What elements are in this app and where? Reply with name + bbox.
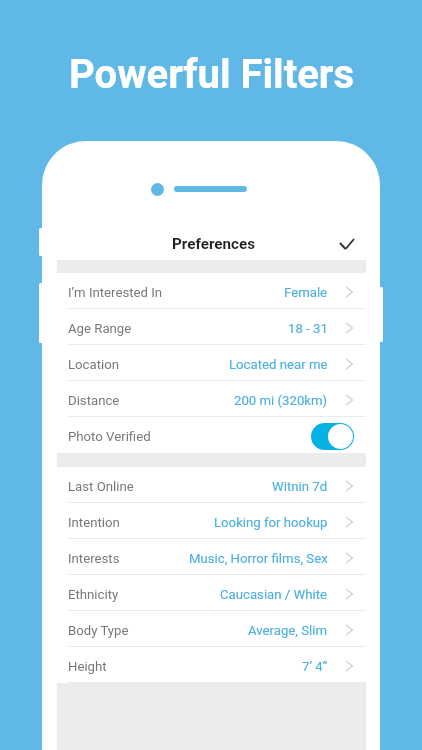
staticText: Average, Slim	[248, 623, 328, 638]
staticText: I’m Interested In	[68, 285, 163, 300]
staticText: Powerful Filters	[69, 51, 354, 98]
staticText: Female	[284, 285, 328, 300]
button[interactable]: Distance	[57, 381, 366, 417]
staticText: Interests	[68, 551, 120, 566]
button[interactable]: Intention	[57, 503, 366, 539]
button[interactable]: Last Online	[57, 467, 366, 503]
staticText: Ethnicity	[68, 587, 119, 602]
staticText: Caucasian / White	[220, 587, 328, 602]
button[interactable]: Done	[334, 231, 360, 257]
staticText: 200 mi (320km)	[234, 393, 328, 408]
staticText: Witnin 7d	[272, 479, 328, 494]
staticText: Body Type	[68, 623, 129, 638]
button[interactable]: Location	[57, 345, 366, 381]
staticText: Last Online	[68, 479, 134, 494]
staticText: 7’ 4’’	[302, 659, 328, 674]
staticText: Photo Verified	[68, 429, 151, 444]
staticText: Height	[68, 659, 107, 674]
button[interactable]: Interests	[57, 539, 366, 575]
staticText: Located near me	[229, 357, 328, 372]
button[interactable]: Ethnicity	[57, 575, 366, 611]
staticText: Age Range	[68, 321, 132, 336]
staticText: Distance	[68, 393, 120, 408]
button[interactable]: I’m Interested In	[57, 273, 366, 309]
staticText: Intention	[68, 515, 120, 530]
staticText: Music, Horror films, Sex	[189, 551, 328, 566]
staticText: Preferences	[172, 235, 255, 253]
staticText: Looking for hookup	[214, 515, 328, 530]
button[interactable]: Age Range	[57, 309, 366, 345]
button[interactable]: Photo Verified	[57, 417, 366, 453]
button[interactable]: Height	[57, 647, 366, 683]
staticText: Location	[68, 357, 120, 372]
staticText: 18 - 31	[288, 321, 328, 336]
button[interactable]: Body Type	[57, 611, 366, 647]
